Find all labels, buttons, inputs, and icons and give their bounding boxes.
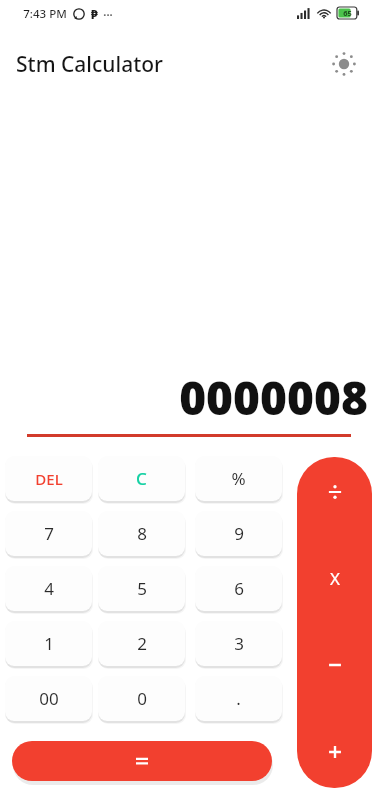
staticText: 3 — [234, 632, 244, 655]
staticText: 2 — [137, 632, 147, 655]
staticText: DEL — [35, 469, 63, 489]
staticText: 0000008 — [179, 366, 368, 424]
staticText: 6 — [234, 577, 244, 600]
button[interactable]: 6 — [195, 566, 282, 611]
button[interactable]: Add — [297, 714, 372, 788]
staticText: 7:43 PM — [23, 6, 67, 22]
button[interactable]: 8 — [98, 511, 185, 556]
button[interactable]: 2 — [98, 621, 185, 666]
staticText: 0 — [137, 687, 147, 710]
staticText: ··· — [103, 7, 113, 22]
staticText: . — [236, 687, 241, 710]
staticText: Stm Calculator — [16, 50, 163, 79]
button[interactable]: Toggle theme — [324, 44, 364, 84]
staticText: C — [136, 467, 147, 490]
button[interactable]: Subtract — [297, 627, 372, 703]
staticText: 65 — [343, 8, 352, 18]
button[interactable]: 4 — [5, 566, 92, 611]
button[interactable]: 9 — [195, 511, 282, 556]
button[interactable]: Equals — [12, 741, 272, 781]
staticText: 1 — [44, 632, 54, 655]
button[interactable]: 5 — [98, 566, 185, 611]
button[interactable]: 1 — [5, 621, 92, 666]
staticText: 00 — [39, 687, 59, 710]
button[interactable]: % — [195, 456, 282, 501]
button[interactable]: Multiply — [297, 540, 372, 616]
button[interactable]: 3 — [195, 621, 282, 666]
staticText: 5 — [137, 577, 147, 600]
staticText: 4 — [44, 577, 54, 600]
button[interactable]: 00 — [5, 676, 92, 721]
staticText: 9 — [234, 522, 244, 545]
button[interactable]: 0 — [98, 676, 185, 721]
staticText: X — [330, 567, 340, 590]
staticText: 8 — [137, 522, 147, 545]
button[interactable]: 7 — [5, 511, 92, 556]
staticText: 7 — [44, 522, 54, 545]
staticText: ₱ — [91, 6, 98, 22]
button[interactable]: C — [98, 456, 185, 501]
button[interactable]: . — [195, 676, 282, 721]
button[interactable]: DEL — [5, 456, 92, 501]
staticText: % — [231, 467, 246, 490]
button[interactable]: Divide — [297, 457, 372, 530]
